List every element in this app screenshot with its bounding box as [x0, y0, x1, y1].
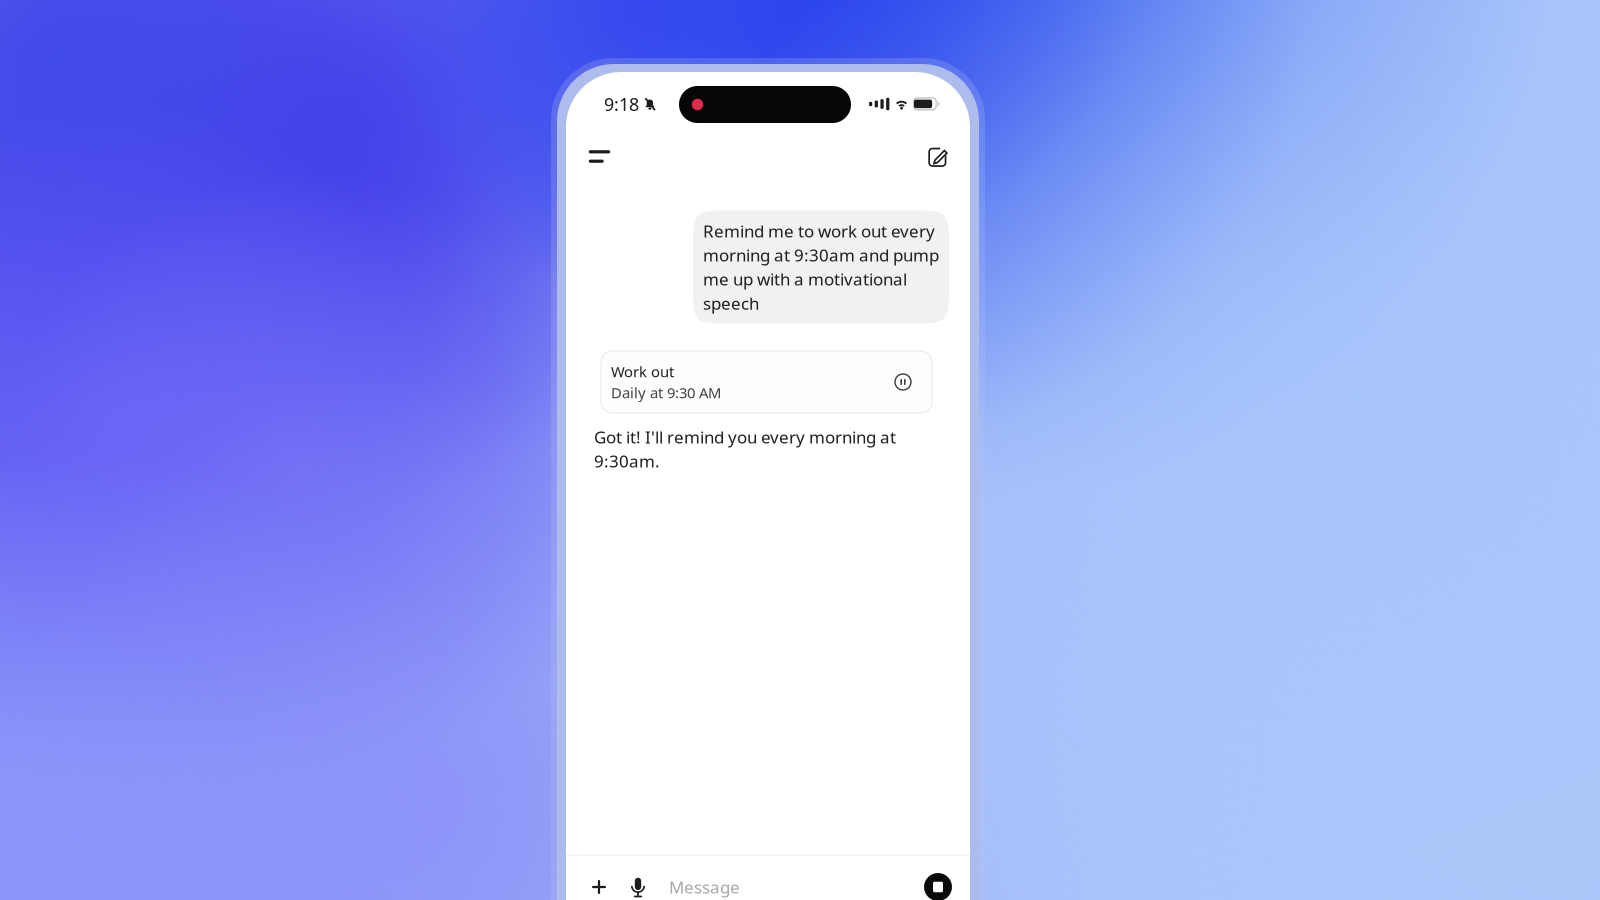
staticText: Daily at 9:30 AM — [611, 382, 721, 403]
staticText: 9:18 — [604, 92, 639, 116]
button[interactable]: New chat — [920, 140, 956, 174]
staticText: Remind me to work out every morning at 9… — [703, 219, 939, 315]
staticText: Work out — [611, 361, 674, 381]
button[interactable]: Stop — [924, 873, 952, 900]
button[interactable]: Add attachment — [583, 871, 615, 900]
staticText: Message — [669, 875, 740, 899]
button[interactable]: Pause reminder — [890, 369, 916, 395]
staticText: Got it! I'll remind you every morning at… — [594, 425, 896, 472]
button[interactable]: Menu — [580, 141, 618, 171]
button[interactable]: Dictate — [622, 871, 654, 900]
